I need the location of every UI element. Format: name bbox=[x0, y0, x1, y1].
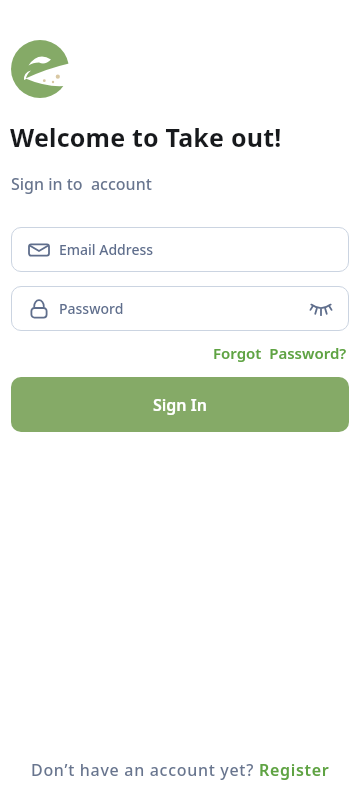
staticText: Password bbox=[59, 299, 124, 318]
button[interactable]: Password bbox=[11, 286, 349, 331]
staticText: Sign In bbox=[153, 394, 207, 416]
button[interactable] bbox=[303, 291, 339, 327]
staticText: Email Address bbox=[59, 240, 154, 259]
button[interactable]: Email Address bbox=[11, 227, 349, 272]
staticText: Welcome to Take out! bbox=[10, 120, 282, 154]
button[interactable]: Don’t have an account yet? Register bbox=[31, 759, 330, 781]
button[interactable]: Sign In bbox=[11, 377, 349, 432]
staticText: Sign in to account bbox=[11, 173, 152, 195]
button[interactable]: Forgot Password? bbox=[213, 343, 347, 363]
